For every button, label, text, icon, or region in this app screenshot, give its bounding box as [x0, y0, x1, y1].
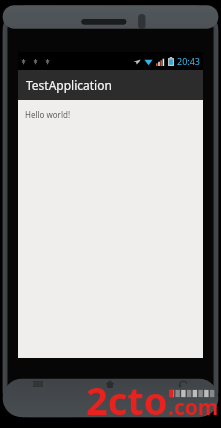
staticText: TestApplication — [26, 77, 112, 93]
button[interactable]: TestApplication — [18, 70, 203, 100]
button[interactable]: Menu — [28, 374, 48, 394]
staticText: .com — [168, 393, 219, 422]
button[interactable]: Home — [100, 374, 120, 394]
staticText: Hello world! — [25, 109, 71, 120]
button[interactable]: Back — [173, 374, 193, 394]
staticText: 20:43 — [177, 55, 201, 67]
staticText: 2cto — [86, 374, 168, 426]
